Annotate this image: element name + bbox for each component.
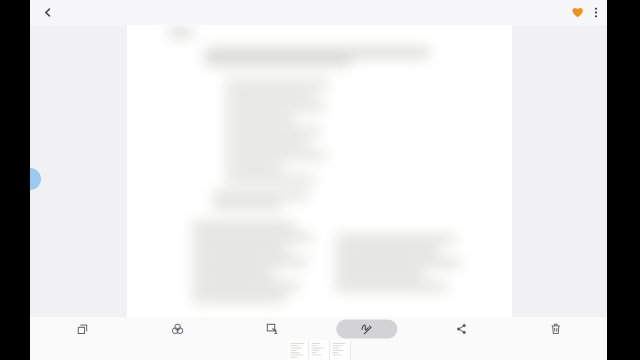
button[interactable]: More options <box>587 0 605 25</box>
button[interactable]: Share <box>430 318 492 360</box>
button[interactable]: Favourite <box>568 0 587 25</box>
button[interactable]: Back <box>31 0 65 25</box>
button[interactable]: Markup <box>241 318 303 360</box>
button[interactable]: Sign <box>336 318 398 360</box>
button[interactable]: Rotate <box>52 318 114 360</box>
button[interactable]: Filters <box>147 318 209 360</box>
button[interactable]: Delete <box>525 318 587 360</box>
